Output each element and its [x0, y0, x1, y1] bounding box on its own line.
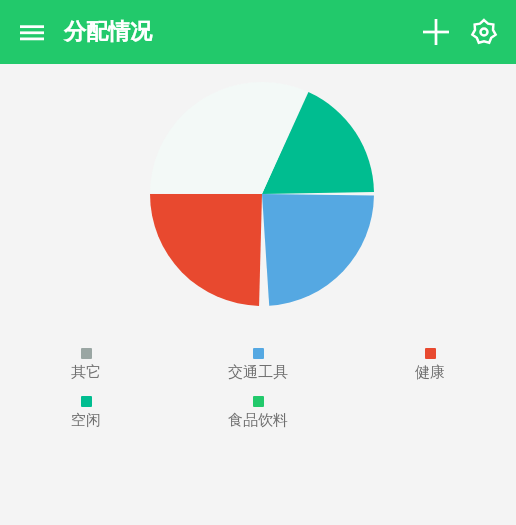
- staticText: 健康: [415, 363, 445, 382]
- staticText: 分配情况: [64, 18, 152, 46]
- button[interactable]: 空闲: [0, 394, 172, 432]
- button[interactable]: Settings: [460, 8, 508, 56]
- staticText: 空闲: [71, 411, 101, 430]
- button[interactable]: 健康: [344, 346, 516, 384]
- button[interactable]: 食品饮料: [172, 394, 344, 432]
- button[interactable]: 其它: [0, 346, 172, 384]
- button[interactable]: 交通工具: [172, 346, 344, 384]
- staticText: 其它: [71, 363, 101, 382]
- staticText: 交通工具: [228, 363, 288, 382]
- button[interactable]: Menu: [12, 12, 52, 52]
- staticText: 食品饮料: [228, 411, 288, 430]
- button[interactable]: Add: [412, 8, 460, 56]
